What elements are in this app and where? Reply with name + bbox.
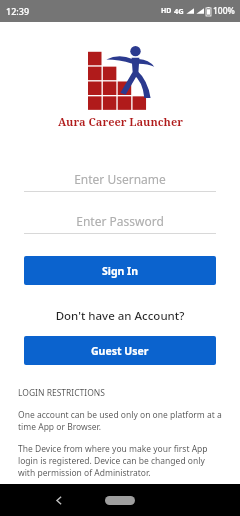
button[interactable]: Sign In [24,256,216,285]
staticText: LOGIN RESTRICTIONS [18,387,105,399]
button[interactable]: Guest User [24,336,216,365]
staticText: The Device from where you make your firs… [18,443,222,479]
staticText: 4G [174,6,184,16]
staticText: Don't have an Account? [0,308,240,324]
staticText: 12:39 [6,5,30,17]
staticText: 100% [213,5,235,17]
staticText: Enter Password [76,213,164,229]
staticText: HD [161,6,172,16]
button[interactable]: Enter Username [24,170,216,192]
staticText: Enter Username [74,171,166,187]
button[interactable]: Back [48,489,70,511]
staticText: Sign In [102,264,139,278]
staticText: Aura Career Launcher [58,114,183,129]
button[interactable]: Home [105,496,135,505]
button[interactable]: Enter Password [24,212,216,234]
staticText: Guest User [91,344,149,358]
staticText: One account can be used only on one plat… [18,409,222,433]
